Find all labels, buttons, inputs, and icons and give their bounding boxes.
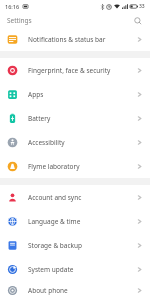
staticText: Account and sync — [28, 193, 82, 202]
staticText: Language & time — [28, 217, 81, 226]
button[interactable]: Battery — [0, 106, 150, 130]
staticText: Notifications & status bar — [28, 35, 106, 44]
staticText: System update — [28, 265, 74, 274]
button[interactable]: About phone — [0, 281, 150, 300]
staticText: Battery — [28, 114, 51, 123]
staticText: Settings — [7, 16, 32, 25]
button[interactable]: System update — [0, 257, 150, 281]
staticText: Apps — [28, 90, 44, 99]
staticText: Flyme laboratory — [28, 162, 80, 171]
staticText: Accessibility — [28, 138, 65, 147]
button[interactable]: Account and sync — [0, 185, 150, 209]
button[interactable]: Storage & backup — [0, 233, 150, 257]
staticText: Storage & backup — [28, 241, 83, 250]
staticText: 33 — [139, 3, 145, 10]
button[interactable]: Language & time — [0, 209, 150, 233]
button[interactable]: Accessibility — [0, 130, 150, 154]
staticText: Fingerprint, face & security — [28, 66, 111, 75]
staticText: 16:16 — [5, 3, 20, 10]
button[interactable]: Fingerprint, face & security — [0, 58, 150, 82]
staticText: About phone — [28, 286, 68, 295]
button[interactable]: Flyme laboratory — [0, 154, 150, 178]
button[interactable]: Search — [132, 15, 143, 26]
button[interactable]: Notifications & status bar — [0, 27, 150, 51]
button[interactable]: Apps — [0, 82, 150, 106]
